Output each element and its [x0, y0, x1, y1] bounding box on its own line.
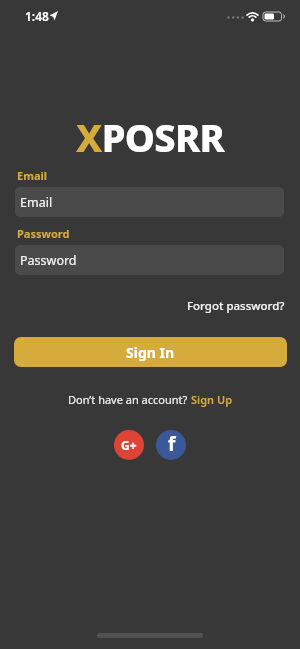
- staticText: Password: [17, 226, 70, 241]
- staticText: Sign Up: [191, 392, 233, 407]
- button[interactable]: f: [156, 430, 186, 460]
- staticText: Sign In: [126, 343, 175, 362]
- staticText: Email: [17, 168, 48, 183]
- button[interactable]: Password: [15, 245, 284, 275]
- staticText: G+: [121, 437, 137, 453]
- button[interactable]: G+: [114, 430, 144, 460]
- staticText: XPOSRR: [76, 111, 225, 155]
- staticText: Email: [20, 194, 53, 211]
- staticText: Don’t have an account?: [68, 392, 191, 407]
- button[interactable]: Sign Up: [191, 392, 233, 407]
- button[interactable]: Sign In: [14, 337, 287, 367]
- staticText: f: [168, 431, 176, 457]
- button[interactable]: Forgot password?: [187, 298, 285, 314]
- staticText: Password: [20, 252, 77, 269]
- button[interactable]: Email: [15, 187, 284, 217]
- staticText: Forgot password?: [187, 298, 285, 314]
- staticText: 1:48: [25, 8, 49, 24]
